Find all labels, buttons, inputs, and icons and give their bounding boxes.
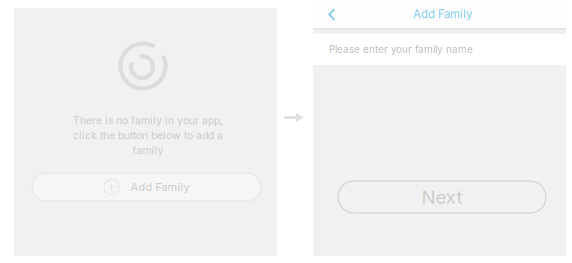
staticText: Add Family xyxy=(130,180,189,194)
staticText: click the button below to add a xyxy=(73,129,223,142)
button[interactable]: Add Family xyxy=(32,173,261,201)
staticText: Add Family xyxy=(413,7,472,21)
staticText: Please enter your family name xyxy=(329,43,473,55)
staticText: family xyxy=(132,144,163,157)
button[interactable]: Next xyxy=(338,181,546,213)
button[interactable]: Back xyxy=(322,2,348,26)
staticText: Next xyxy=(421,186,462,208)
staticText: There is no family in your app, xyxy=(73,114,223,127)
